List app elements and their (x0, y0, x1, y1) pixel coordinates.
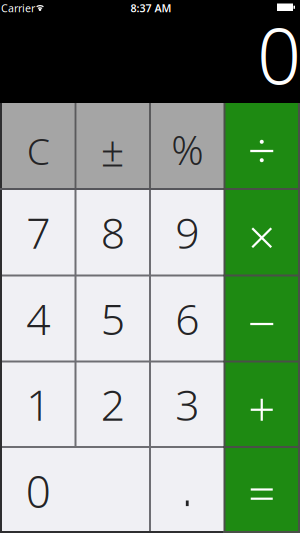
staticText: C (27, 126, 50, 175)
button[interactable]: ± (76, 103, 149, 188)
button[interactable]: C (2, 103, 74, 188)
staticText: 1 (26, 376, 50, 433)
staticText: 4 (26, 290, 50, 347)
staticText: 3 (175, 376, 199, 433)
button[interactable]: 0 (2, 448, 149, 531)
staticText: 6 (175, 290, 199, 347)
staticText: 5 (101, 290, 125, 347)
button[interactable]: Multiply (225, 190, 298, 274)
staticText: 0 (257, 3, 300, 105)
staticText: 8:37 AM (130, 1, 171, 15)
button[interactable]: 2 (76, 362, 149, 446)
staticText: 8 (101, 204, 125, 261)
staticText: % (171, 123, 203, 176)
button[interactable]: 4 (2, 276, 74, 360)
button[interactable]: Decimal point (151, 448, 223, 531)
button[interactable]: 1 (2, 362, 74, 446)
staticText: 7 (26, 204, 50, 261)
button[interactable]: 7 (2, 190, 74, 274)
button[interactable]: 8 (76, 190, 149, 274)
button[interactable]: 6 (151, 276, 223, 360)
button[interactable]: 5 (76, 276, 149, 360)
staticText: 0 (26, 462, 51, 520)
staticText: Carrier (1, 1, 35, 15)
button[interactable]: Subtract (225, 276, 298, 360)
staticText: 9 (175, 204, 199, 261)
staticText: ± (101, 123, 125, 178)
button[interactable]: % (151, 103, 223, 188)
button[interactable]: Add (225, 362, 298, 446)
button[interactable]: Equals (225, 448, 298, 531)
button[interactable]: 3 (151, 362, 223, 446)
staticText: 2 (101, 376, 125, 433)
button[interactable]: Divide (225, 103, 298, 188)
button[interactable]: 9 (151, 190, 223, 274)
